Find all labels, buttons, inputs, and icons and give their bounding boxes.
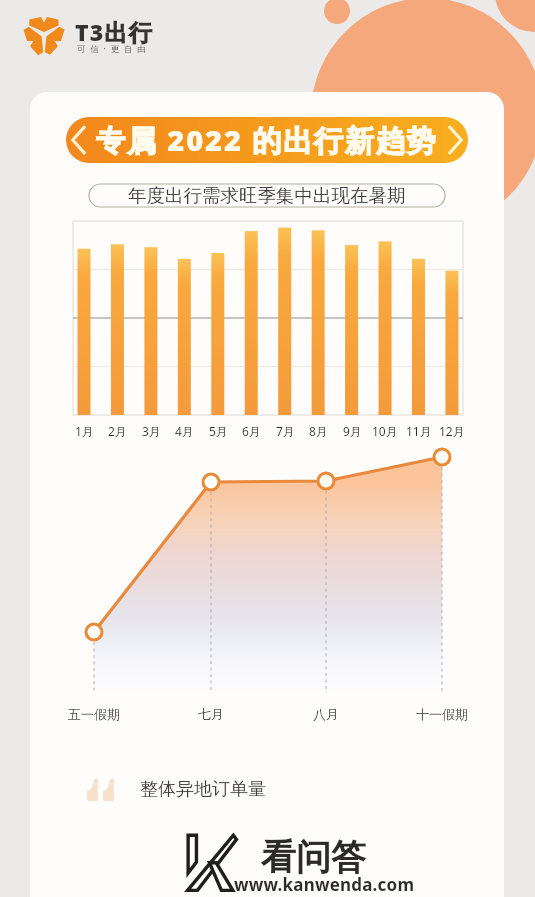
- staticText: 五一假期: [68, 706, 120, 722]
- staticText: 6月: [242, 423, 261, 439]
- staticText: 8月: [309, 423, 328, 439]
- staticText: www.kanwenda.com: [234, 873, 415, 896]
- staticText: 年度出行需求旺季集中出现在暑期: [128, 184, 406, 207]
- staticText: 11月: [406, 423, 432, 439]
- staticText: 七月: [198, 706, 224, 722]
- staticText: T3出行: [75, 16, 153, 47]
- staticText: 9月: [343, 423, 362, 439]
- staticText: 5月: [209, 423, 228, 439]
- staticText: 7月: [276, 423, 295, 439]
- staticText: 专属 2022 的出行新趋势: [96, 120, 438, 160]
- staticText: 12月: [439, 423, 465, 439]
- staticText: 八月: [313, 706, 339, 722]
- staticText: 2月: [108, 423, 127, 439]
- staticText: 4月: [175, 423, 194, 439]
- staticText: 可信·更自由: [77, 43, 151, 55]
- staticText: 看问答: [261, 835, 366, 879]
- button[interactable]: 年度出行需求旺季集中出现在暑期: [89, 184, 445, 207]
- staticText: 3月: [142, 423, 161, 439]
- staticText: 整体异地订单量: [140, 778, 266, 801]
- staticText: 1月: [75, 423, 94, 439]
- staticText: 十一假期: [416, 706, 468, 722]
- button[interactable]: 专属 2022 的出行新趋势: [66, 117, 468, 163]
- staticText: 10月: [372, 423, 398, 439]
- other: T3出行 logo: [21, 14, 67, 59]
